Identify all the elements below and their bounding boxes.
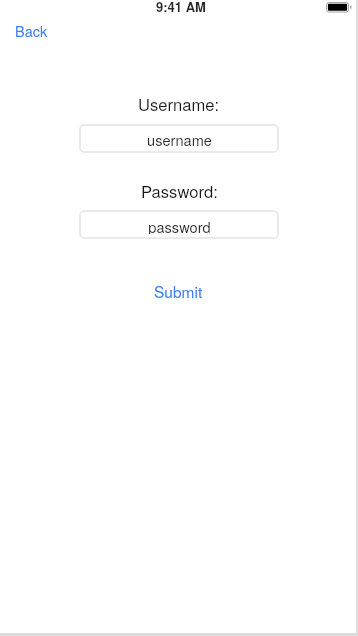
staticText: password bbox=[148, 216, 211, 234]
other: Battery full bbox=[326, 2, 352, 13]
button[interactable]: password bbox=[79, 210, 279, 239]
staticText: username bbox=[147, 129, 212, 149]
staticText: 9:41 AM bbox=[156, 0, 206, 16]
button[interactable]: username bbox=[79, 124, 279, 153]
button[interactable]: Submit bbox=[146, 276, 211, 306]
staticText: Submit bbox=[154, 280, 203, 302]
button[interactable]: Back bbox=[9, 16, 54, 45]
staticText: Password: bbox=[141, 179, 218, 203]
staticText: Back bbox=[15, 20, 48, 41]
staticText: Username: bbox=[138, 92, 220, 116]
